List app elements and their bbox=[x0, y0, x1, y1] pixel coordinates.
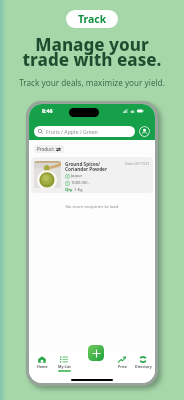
staticText: Qty bbox=[65, 187, 73, 193]
staticText: Jaipur bbox=[71, 173, 83, 179]
staticText: 8:46 bbox=[42, 107, 53, 114]
button[interactable]: My List bbox=[52, 356, 76, 372]
button[interactable]: Track bbox=[66, 10, 118, 28]
staticText: Product bbox=[37, 146, 54, 152]
staticText: 1000.00/- bbox=[71, 180, 89, 186]
button[interactable]: Home bbox=[30, 356, 54, 369]
button[interactable]: Product bbox=[34, 145, 64, 153]
staticText: No more enquiries to load bbox=[29, 203, 155, 209]
button[interactable]: Price bbox=[110, 356, 134, 369]
staticText: Home bbox=[37, 364, 48, 369]
staticText: My List bbox=[58, 364, 71, 369]
staticText: Track your deals, maximize your yield. bbox=[0, 77, 184, 88]
button[interactable]: Ground Spices/ Coriander Powder bbox=[31, 157, 153, 193]
button[interactable]: Profile bbox=[139, 126, 150, 137]
staticText: Fruits / Apple / Green bbox=[46, 128, 98, 135]
staticText: Price bbox=[118, 364, 127, 369]
staticText: Date: 05/11/23 bbox=[125, 161, 150, 166]
staticText: Ground Spices/ Coriander Powder bbox=[65, 161, 107, 172]
staticText: 1 Kg bbox=[74, 187, 83, 193]
button[interactable]: Add new bbox=[88, 345, 104, 361]
button[interactable]: Directory bbox=[131, 356, 155, 369]
button[interactable]: Fruits / Apple / Green bbox=[34, 126, 135, 137]
staticText: Track bbox=[78, 12, 107, 26]
staticText: Manage your trade with ease. bbox=[0, 33, 184, 71]
staticText: Directory bbox=[135, 364, 152, 369]
